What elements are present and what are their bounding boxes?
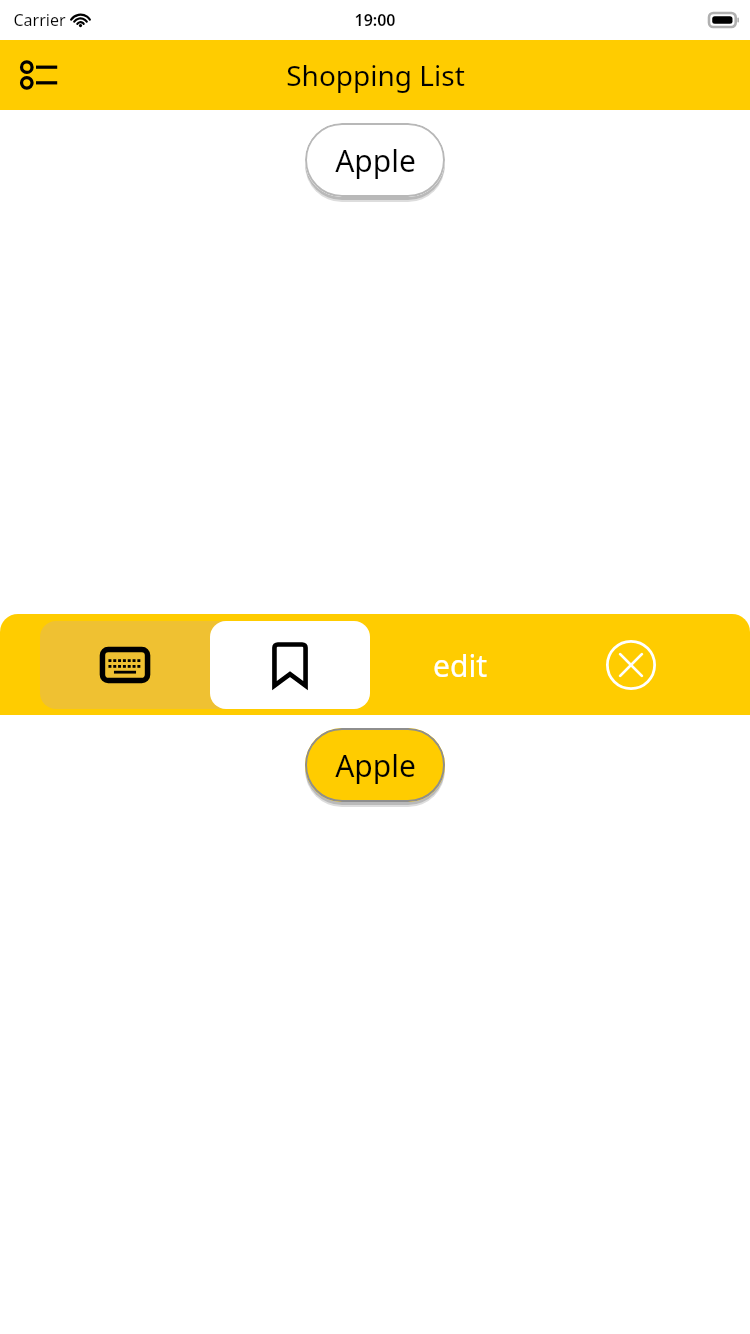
staticText: Carrier: [13, 9, 66, 31]
staticText: Apple: [335, 745, 416, 786]
staticText: 19:00: [354, 9, 396, 31]
staticText: Shopping List: [286, 56, 465, 94]
button[interactable]: Close: [598, 632, 664, 698]
staticText: Apple: [335, 140, 416, 181]
button[interactable]: Bookmark: [210, 621, 370, 709]
button[interactable]: Apple: [305, 123, 445, 197]
button[interactable]: Apple: [305, 728, 445, 802]
staticText: edit: [433, 645, 487, 686]
button[interactable]: Keyboard: [40, 621, 210, 709]
button[interactable]: edit: [370, 621, 550, 709]
button[interactable]: Menu: [12, 47, 68, 103]
